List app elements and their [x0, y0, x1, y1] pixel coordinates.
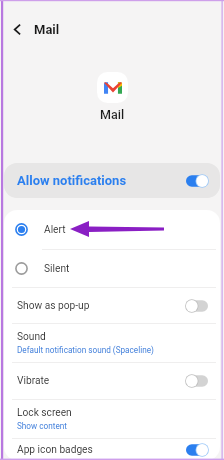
button[interactable]: Vibrate [4, 363, 220, 399]
staticText: Alert [44, 224, 66, 236]
staticText: Mail [100, 107, 125, 122]
button[interactable]: Navigate up [0, 9, 34, 49]
staticText: Silent [44, 263, 70, 275]
button[interactable]: Off [186, 299, 208, 313]
button[interactable]: Show as pop-up [4, 288, 220, 323]
staticText: Mail [34, 22, 60, 37]
staticText: Allow notifications [17, 173, 127, 188]
staticText: Sound [17, 331, 46, 343]
button[interactable]: Allow notifications [4, 163, 220, 198]
staticText: Show as pop-up [17, 300, 90, 312]
button[interactable]: Alert [4, 210, 220, 249]
button[interactable]: Off [186, 374, 208, 388]
staticText: App icon badges [17, 444, 93, 456]
button[interactable]: Silent [4, 250, 220, 287]
staticText: Default notification sound (Spaceline) [17, 345, 154, 355]
button[interactable]: On [186, 443, 208, 457]
button[interactable]: On [186, 174, 208, 188]
button[interactable]: App icon badges [4, 439, 220, 460]
button[interactable]: Lock screen [4, 400, 220, 438]
staticText: Show content [17, 421, 67, 431]
staticText: Lock screen [17, 407, 72, 419]
staticText: Vibrate [17, 375, 50, 387]
button[interactable]: Sound [4, 324, 220, 362]
